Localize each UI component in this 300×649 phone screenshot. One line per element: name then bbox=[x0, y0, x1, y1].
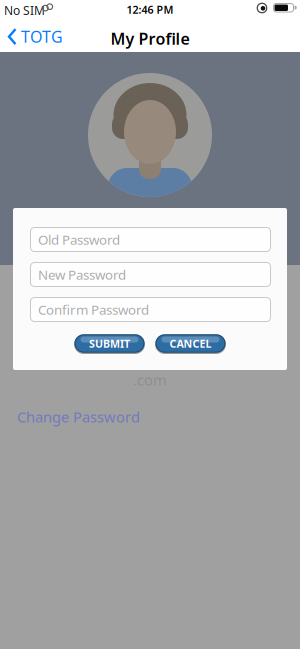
staticText: My Profile bbox=[110, 28, 189, 49]
staticText: SUBMIT bbox=[89, 336, 130, 351]
staticText: CANCEL bbox=[169, 336, 211, 351]
staticText: 12:46 PM bbox=[126, 2, 173, 17]
staticText: Change Password bbox=[17, 407, 140, 426]
button[interactable]: Old Password bbox=[30, 227, 271, 252]
button[interactable]: TOTG bbox=[7, 26, 63, 47]
button[interactable]: SUBMIT bbox=[74, 333, 145, 354]
staticText: .com bbox=[133, 370, 167, 389]
staticText: TOTG bbox=[21, 26, 63, 47]
button[interactable]: Change Password bbox=[17, 407, 140, 426]
button[interactable]: New Password bbox=[30, 262, 271, 287]
staticText: New Password bbox=[38, 266, 126, 283]
button[interactable]: CANCEL bbox=[155, 333, 226, 354]
button[interactable]: Confirm Password bbox=[30, 297, 271, 322]
staticText: No SIM bbox=[4, 2, 45, 18]
staticText: Confirm Password bbox=[38, 301, 149, 318]
staticText: Old Password bbox=[38, 231, 120, 248]
